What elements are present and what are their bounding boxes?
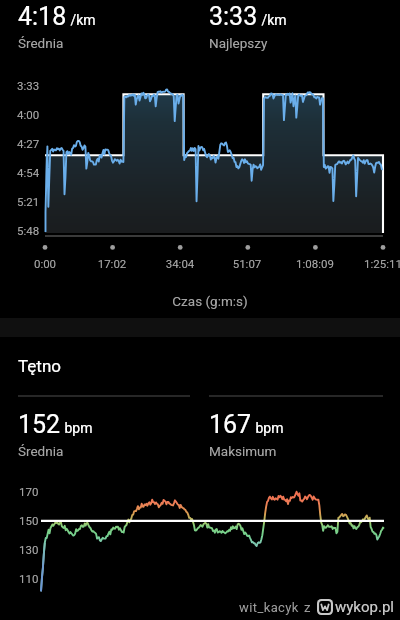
staticText: z [304, 600, 311, 615]
staticText: 130 [19, 543, 39, 556]
staticText: 4:18 [18, 2, 67, 31]
staticText: /km [258, 12, 287, 28]
staticText: 5:21 [17, 195, 40, 208]
staticText: 5:48 [17, 224, 40, 237]
staticText: 150 [19, 514, 39, 527]
staticText: Najlepszy [209, 35, 268, 51]
staticText: /km [67, 12, 96, 28]
staticText: wit_kacyk [239, 600, 299, 615]
staticText: 0:00 [0, 257, 90, 270]
staticText: wykop.pl [335, 598, 394, 616]
staticText: 170 [19, 485, 39, 498]
staticText: Maksimum [209, 443, 277, 459]
staticText: Średnia [18, 35, 64, 51]
staticText: 152 [18, 410, 61, 439]
staticText: 167 [209, 410, 252, 439]
staticText: Tętno [18, 356, 61, 376]
button[interactable]: 4:18 [0, 0, 400, 318]
staticText: 17:02 [67, 257, 157, 270]
staticText: 3:33 [17, 79, 40, 92]
staticText: 1:08:09 [270, 257, 360, 270]
staticText: 110 [19, 572, 39, 585]
staticText: 4:54 [17, 166, 40, 179]
staticText: bpm [61, 420, 93, 436]
staticText: 1:25:11 [338, 257, 400, 270]
staticText: Średnia [18, 443, 64, 459]
staticText: 4:00 [17, 108, 40, 121]
staticText: Czas (g:m:s) [110, 293, 310, 309]
staticText: 34:04 [135, 257, 225, 270]
staticText: 4:27 [17, 137, 40, 150]
button[interactable]: Tętno [0, 337, 400, 620]
staticText: 3:33 [209, 2, 258, 31]
staticText: bpm [252, 420, 284, 436]
staticText: 51:07 [202, 257, 292, 270]
